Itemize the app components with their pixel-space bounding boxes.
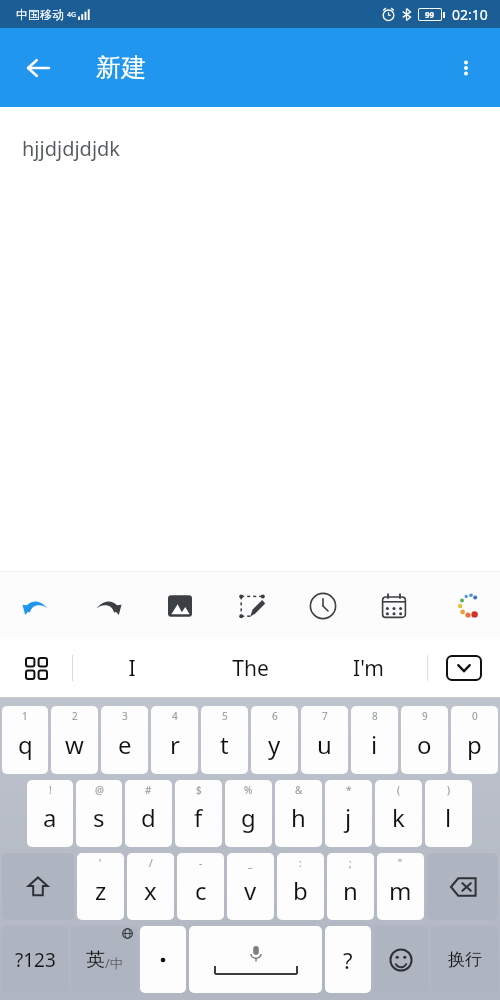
staticText: g — [241, 801, 256, 834]
button[interactable]: ! — [27, 780, 73, 847]
staticText: p — [467, 728, 482, 761]
button[interactable]: Backspace — [427, 853, 498, 920]
button[interactable]: 9 — [401, 706, 448, 774]
button[interactable]: 2 — [51, 706, 98, 774]
button[interactable]: Insert date — [358, 572, 429, 639]
button[interactable]: ( — [375, 780, 422, 847]
button[interactable]: ) — [425, 780, 472, 847]
staticText: 1 — [22, 709, 28, 723]
staticText: y — [268, 728, 281, 761]
staticText: - — [199, 856, 203, 870]
staticText: / — [149, 856, 153, 870]
staticText: 5 — [222, 709, 228, 723]
button[interactable]: 0 — [451, 706, 498, 774]
staticText: l — [445, 801, 452, 834]
button[interactable]: * — [325, 780, 372, 847]
staticText: t — [220, 728, 229, 761]
button[interactable]: 换行 — [431, 926, 498, 993]
button[interactable]: - — [177, 853, 224, 920]
button[interactable]: More — [429, 572, 500, 639]
button[interactable]: % — [225, 780, 272, 847]
staticText: 02:10 — [452, 5, 488, 24]
staticText: ! — [49, 783, 52, 797]
button[interactable]: # — [125, 780, 172, 847]
staticText: w — [65, 728, 84, 761]
staticText: e — [118, 728, 132, 761]
staticText: 3 — [122, 709, 128, 723]
button[interactable]: 6 — [251, 706, 298, 774]
staticText: I — [128, 654, 136, 683]
button[interactable]: & — [275, 780, 322, 847]
button[interactable]: Redo — [72, 572, 144, 639]
button[interactable]: The — [191, 639, 309, 697]
staticText: 4G — [67, 10, 77, 20]
staticText: 2 — [72, 709, 78, 723]
button[interactable]: 8 — [351, 706, 398, 774]
staticText: ) — [447, 783, 450, 797]
staticText: j — [345, 801, 352, 834]
button[interactable]: Emoji — [374, 926, 428, 993]
staticText: x — [144, 874, 157, 907]
button[interactable]: Insert image — [144, 572, 216, 639]
staticText: ?123 — [15, 947, 56, 973]
button[interactable]: 1 — [2, 706, 48, 774]
staticText: $ — [196, 783, 202, 797]
staticText: 6 — [272, 709, 278, 723]
button[interactable]: ; — [327, 853, 374, 920]
staticText: s — [93, 801, 105, 834]
staticText: v — [244, 874, 257, 907]
button[interactable]: Hide keyboard — [428, 639, 500, 697]
button[interactable]: I'm — [309, 639, 427, 697]
staticText: 0 — [472, 709, 478, 723]
button[interactable]: Back — [10, 40, 66, 96]
button[interactable]: ? — [325, 926, 371, 993]
staticText: /中 — [105, 954, 123, 972]
button[interactable]: 3 — [101, 706, 148, 774]
staticText: * — [346, 783, 352, 797]
staticText: : — [299, 856, 302, 870]
staticText: 换行 — [448, 949, 482, 970]
staticText: n — [343, 874, 358, 907]
staticText: 英 — [86, 948, 105, 972]
staticText: z — [95, 874, 107, 907]
staticText: 8 — [372, 709, 378, 723]
button[interactable]: Switch language — [71, 926, 137, 993]
staticText: # — [145, 783, 152, 797]
button[interactable]: ?123 — [2, 926, 68, 993]
button[interactable]: More options — [440, 42, 492, 94]
staticText: r — [170, 728, 180, 761]
staticText: I'm — [353, 654, 384, 683]
button[interactable]: I — [73, 639, 191, 697]
button[interactable]: 5 — [201, 706, 248, 774]
button[interactable]: / — [127, 853, 174, 920]
button[interactable]: $ — [175, 780, 222, 847]
staticText: 7 — [322, 709, 328, 723]
button[interactable]: Period — [140, 926, 186, 993]
button[interactable]: Space — [189, 926, 322, 993]
button[interactable]: @ — [76, 780, 122, 847]
staticText: o — [417, 728, 432, 761]
button[interactable]: Undo — [0, 572, 72, 639]
staticText: i — [371, 728, 378, 761]
button[interactable]: Draw — [216, 572, 287, 639]
button[interactable]: : — [277, 853, 324, 920]
button[interactable]: Insert time — [287, 572, 358, 639]
button[interactable]: ' — [77, 853, 124, 920]
button[interactable]: " — [377, 853, 424, 920]
button[interactable]: Shift — [2, 853, 74, 920]
staticText: ' — [99, 856, 102, 870]
button[interactable]: Keyboard menu — [0, 639, 72, 697]
button[interactable]: _ — [227, 853, 274, 920]
staticText: d — [141, 801, 156, 834]
staticText: _ — [248, 856, 253, 870]
staticText: b — [293, 874, 308, 907]
staticText: The — [232, 654, 269, 683]
staticText: " — [398, 856, 403, 870]
button[interactable]: 7 — [301, 706, 348, 774]
staticText: & — [295, 783, 303, 797]
staticText: 新建 — [96, 52, 146, 83]
button[interactable]: 4 — [151, 706, 198, 774]
staticText: @ — [95, 783, 104, 797]
staticText: k — [392, 801, 405, 834]
staticText: h — [291, 801, 306, 834]
